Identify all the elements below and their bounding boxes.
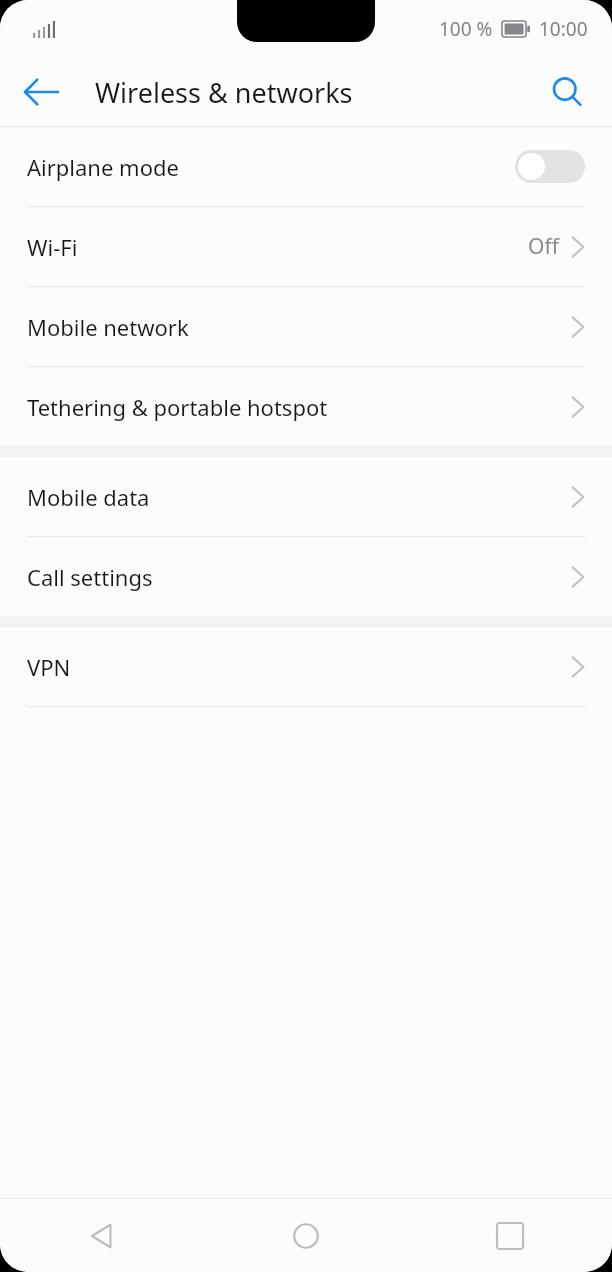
button[interactable]: Home <box>204 1199 408 1272</box>
staticText: Mobile network <box>27 312 189 342</box>
staticText: 10:00 <box>539 16 588 42</box>
button[interactable]: Tethering & portable hotspot <box>0 367 612 446</box>
button[interactable]: Wi-Fi <box>0 207 612 286</box>
button[interactable]: Airplane mode <box>0 127 612 206</box>
staticText: Off <box>528 232 559 261</box>
button[interactable]: Mobile network <box>0 287 612 366</box>
button[interactable]: Back <box>0 1199 204 1272</box>
button[interactable]: VPN <box>0 627 612 706</box>
staticText: Mobile data <box>27 482 150 512</box>
staticText: Tethering & portable hotspot <box>27 392 328 422</box>
staticText: VPN <box>27 652 71 682</box>
button[interactable]: Search <box>543 68 591 116</box>
button[interactable]: Recent apps <box>408 1199 612 1272</box>
button[interactable]: Call settings <box>0 537 612 616</box>
staticText: 100 % <box>439 16 493 42</box>
button[interactable]: Back <box>16 67 66 117</box>
staticText: Wi-Fi <box>27 232 78 262</box>
staticText: Wireless & networks <box>95 74 353 111</box>
button[interactable]: Airplane mode toggle <box>515 150 585 183</box>
staticText: Airplane mode <box>27 152 179 182</box>
button[interactable]: Mobile data <box>0 457 612 536</box>
staticText: Call settings <box>27 562 153 592</box>
